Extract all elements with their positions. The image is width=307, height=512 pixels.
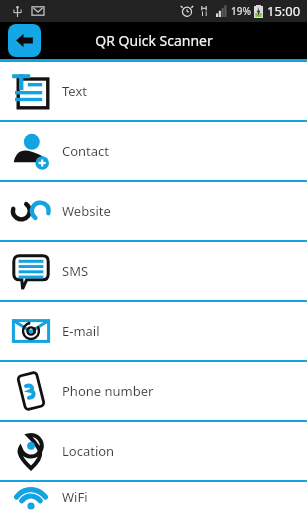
button[interactable]: E-mail bbox=[0, 302, 307, 360]
button[interactable]: Location bbox=[0, 422, 307, 480]
staticText: Contact bbox=[62, 142, 110, 160]
staticText: WiFi bbox=[62, 488, 88, 506]
button[interactable]: Back bbox=[8, 24, 41, 57]
staticText: QR Quick Scanner bbox=[95, 31, 213, 50]
button[interactable]: Website bbox=[0, 182, 307, 240]
button[interactable]: SMS bbox=[0, 242, 307, 300]
button[interactable]: Text bbox=[0, 62, 307, 120]
button[interactable]: Phone number bbox=[0, 362, 307, 420]
staticText: 15:00 bbox=[267, 2, 301, 20]
staticText: SMS bbox=[62, 262, 89, 280]
staticText: Website bbox=[62, 202, 111, 220]
staticText: Location bbox=[62, 442, 115, 460]
button[interactable]: WiFi bbox=[0, 482, 307, 512]
button[interactable]: Contact bbox=[0, 122, 307, 180]
staticText: Text bbox=[62, 82, 87, 100]
staticText: Phone number bbox=[62, 382, 154, 400]
staticText: E-mail bbox=[62, 322, 100, 340]
staticText: 19% bbox=[231, 4, 251, 18]
